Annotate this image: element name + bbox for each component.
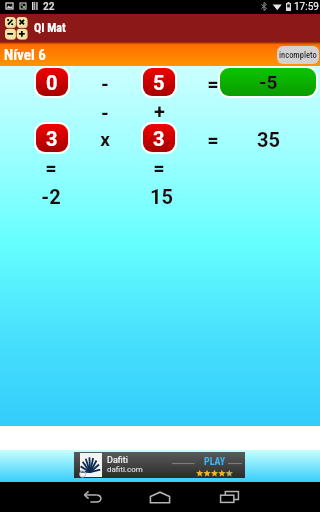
staticText: = [153, 156, 165, 178]
button[interactable]: Back [72, 482, 112, 512]
staticText: 0 [46, 71, 58, 94]
staticText: 17:59 [294, 1, 319, 13]
staticText: = [207, 72, 219, 94]
staticText: = [45, 156, 57, 178]
staticText: x [100, 128, 110, 150]
staticText: 22 [43, 1, 55, 13]
staticText: 3 [46, 127, 58, 150]
staticText: 3 [153, 127, 165, 150]
button[interactable]: -5 [218, 66, 318, 98]
button[interactable]: Home [140, 482, 180, 512]
button[interactable]: 5 [141, 66, 177, 98]
staticText: -5 [259, 71, 278, 93]
staticText: 35 [257, 128, 280, 150]
staticText: 5 [153, 71, 165, 94]
staticText: Dafiti [107, 455, 128, 466]
staticText: + [154, 100, 165, 122]
staticText: 15 [150, 185, 173, 207]
staticText: - [101, 101, 109, 123]
button[interactable]: Recent apps [209, 482, 249, 512]
button[interactable]: Dafiti [74, 452, 245, 478]
button[interactable]: 0 [34, 66, 70, 98]
staticText: PLAY [204, 456, 226, 468]
staticText: - [101, 72, 109, 94]
staticText: -2 [41, 185, 61, 207]
button[interactable]: QI Mat [0, 14, 320, 42]
staticText: QI Mat [34, 21, 66, 35]
staticText: Nível 6 [4, 46, 46, 64]
staticText: = [207, 128, 219, 150]
button[interactable]: incompleto [277, 46, 319, 64]
staticText: dafiti.com [107, 465, 143, 474]
button[interactable]: 3 [34, 122, 70, 154]
button[interactable]: 3 [141, 122, 177, 154]
staticText: incompleto [279, 50, 317, 60]
